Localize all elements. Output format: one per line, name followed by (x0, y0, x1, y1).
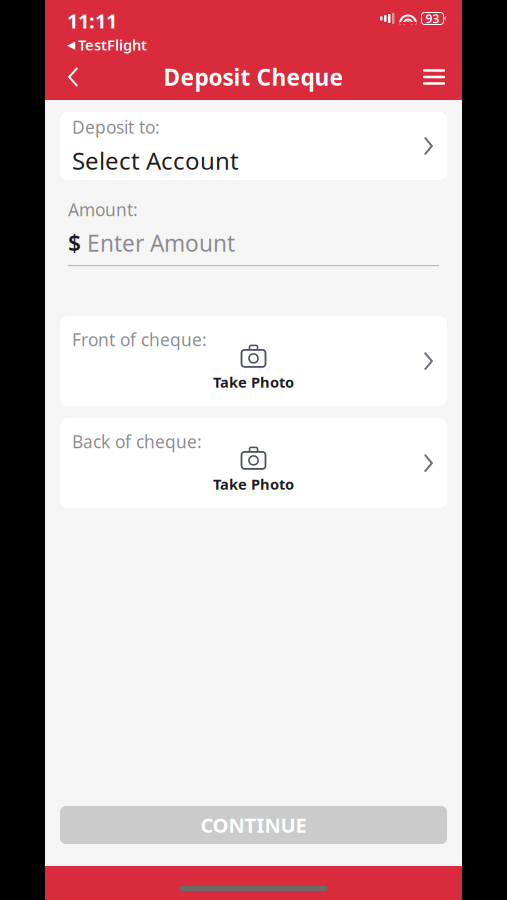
staticText: Deposit Cheque (163, 62, 343, 92)
button[interactable]: Take Photo (60, 316, 447, 406)
staticText: Enter Amount (87, 228, 235, 258)
button[interactable]: CONTINUE (60, 806, 447, 844)
button[interactable]: Take Photo (60, 418, 447, 508)
staticText: Front of cheque: (72, 328, 207, 351)
staticText: Deposit to: (72, 116, 160, 139)
staticText: Take Photo (213, 372, 294, 392)
button[interactable]: Back (51, 55, 95, 99)
staticText: Back of cheque: (72, 430, 202, 453)
staticText: Select Account (72, 145, 239, 176)
button[interactable]: Menu (412, 55, 456, 99)
staticText: Amount: (68, 198, 138, 221)
staticText: ◀ (67, 39, 75, 51)
button[interactable]: Deposit to: (60, 112, 447, 180)
staticText: Take Photo (213, 474, 294, 494)
staticText: CONTINUE (200, 812, 306, 838)
staticText: $ (68, 228, 81, 258)
staticText: TestFlight (78, 35, 147, 54)
staticText: 93 (425, 10, 439, 26)
staticText: 11:11 (67, 7, 117, 34)
